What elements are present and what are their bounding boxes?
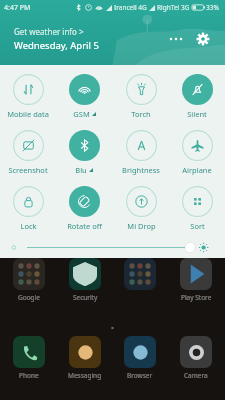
button[interactable]: Security (59, 258, 111, 302)
button[interactable]: Play Store (170, 258, 222, 302)
staticText: Irancell 4G (114, 3, 147, 12)
button[interactable]: More options (165, 28, 187, 50)
button[interactable]: Airplane (169, 125, 225, 175)
staticText: Play Store (181, 293, 212, 302)
button[interactable]: GSM (56, 69, 112, 119)
staticText: Phone (19, 371, 39, 380)
staticText: Browser (127, 371, 153, 380)
button[interactable]: Rotate off (56, 181, 112, 231)
button[interactable]: Phone (3, 336, 55, 380)
button[interactable]: Screenshot (0, 125, 56, 175)
staticText: Camera (184, 371, 208, 380)
staticText: Torch (131, 109, 151, 119)
staticText: Mi Drop (127, 221, 156, 231)
staticText: Airplane (182, 165, 212, 175)
button[interactable]: Torch (113, 69, 169, 119)
button[interactable] (114, 258, 166, 302)
staticText: Sort (190, 221, 205, 231)
staticText: 33% (206, 3, 219, 12)
button[interactable]: Silent (169, 69, 225, 119)
button[interactable]: Camera (170, 336, 222, 380)
staticText: 4:47 PM (4, 3, 31, 13)
staticText: Get weather info > (14, 26, 84, 37)
staticText: Mobile data (7, 109, 49, 119)
staticText: Blu (75, 165, 87, 175)
button[interactable]: Blu (56, 125, 112, 175)
staticText: Google (18, 293, 40, 302)
staticText: GSM (73, 109, 90, 119)
button[interactable]: Mi Drop (113, 181, 169, 231)
button[interactable]: Messaging (59, 336, 111, 380)
button[interactable]: Sort (169, 181, 225, 231)
staticText: Brightness (122, 165, 160, 175)
staticText: Messaging (68, 371, 102, 380)
button[interactable]: Settings (191, 27, 215, 51)
staticText: Security (73, 293, 98, 302)
staticText: Rotate off (67, 221, 102, 231)
staticText: Wednesday, April 5 (14, 39, 99, 52)
button[interactable]: Get weather info > (14, 26, 165, 52)
staticText: Silent (187, 109, 207, 119)
button[interactable]: Lock (0, 181, 56, 231)
staticText: Lock (20, 221, 37, 231)
button[interactable]: Browser (114, 336, 166, 380)
button[interactable]: Brightness (113, 125, 169, 175)
button[interactable]: Mobile data (0, 69, 56, 119)
button[interactable]: Google (3, 258, 55, 302)
staticText: Screenshot (8, 165, 48, 175)
staticText: RighTel 3G (157, 3, 190, 12)
